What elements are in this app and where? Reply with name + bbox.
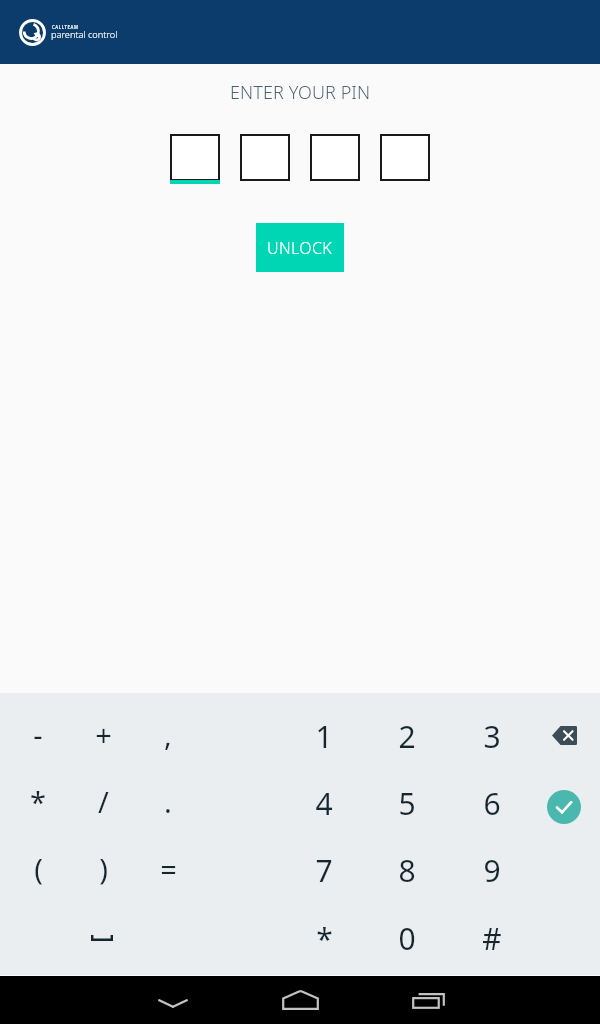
button[interactable]: 9 xyxy=(460,846,524,894)
button[interactable]: Backspace xyxy=(534,711,594,759)
staticText: * xyxy=(316,918,333,959)
staticText: 4 xyxy=(315,783,333,824)
staticText: 6 xyxy=(483,783,501,824)
staticText: parental control xyxy=(51,28,118,41)
button[interactable]: # xyxy=(460,914,524,962)
staticText: * xyxy=(30,782,46,821)
button[interactable] xyxy=(380,134,430,184)
button[interactable]: 4 xyxy=(292,779,356,827)
button[interactable]: 7 xyxy=(292,846,356,894)
button[interactable]: . xyxy=(136,777,200,825)
button[interactable]: Recent apps xyxy=(404,977,452,1024)
staticText: UNLOCK xyxy=(267,237,333,259)
button[interactable]: 5 xyxy=(375,779,439,827)
button[interactable]: - xyxy=(6,710,70,758)
button[interactable]: / xyxy=(71,777,135,825)
button[interactable]: 3 xyxy=(460,712,524,760)
button[interactable]: Space xyxy=(72,914,132,962)
button[interactable]: 0 xyxy=(375,914,439,962)
staticText: ) xyxy=(99,849,108,888)
button[interactable]: 6 xyxy=(460,779,524,827)
button[interactable]: 8 xyxy=(375,846,439,894)
staticText: 3 xyxy=(483,716,501,757)
button[interactable]: + xyxy=(71,710,135,758)
staticText: CALLTEAM xyxy=(52,24,79,30)
staticText: 7 xyxy=(315,850,333,891)
button[interactable]: = xyxy=(136,844,200,892)
button[interactable]: * xyxy=(292,914,356,962)
button[interactable]: Hide keyboard xyxy=(149,979,197,1024)
staticText: - xyxy=(33,715,43,754)
staticText: 1 xyxy=(315,716,333,757)
staticText: + xyxy=(95,715,112,754)
button[interactable]: 2 xyxy=(375,712,439,760)
staticText: / xyxy=(98,782,109,821)
staticText: = xyxy=(160,849,177,888)
button[interactable]: Home xyxy=(276,976,324,1024)
staticText: # xyxy=(482,918,502,959)
staticText: 0 xyxy=(398,918,416,959)
button[interactable] xyxy=(240,134,290,184)
button[interactable]: UNLOCK xyxy=(256,223,344,272)
staticText: , xyxy=(164,715,172,754)
staticText: 9 xyxy=(483,850,501,891)
button[interactable]: Confirm xyxy=(534,783,594,831)
staticText: ENTER YOUR PIN xyxy=(230,80,371,105)
button[interactable] xyxy=(170,134,220,184)
staticText: 8 xyxy=(398,850,416,891)
button[interactable] xyxy=(310,134,360,184)
staticText: 5 xyxy=(398,783,416,824)
button[interactable]: 1 xyxy=(292,712,356,760)
button[interactable]: * xyxy=(6,777,70,825)
staticText: ( xyxy=(34,849,43,888)
staticText: . xyxy=(164,782,172,821)
button[interactable]: ) xyxy=(71,844,135,892)
staticText: 2 xyxy=(398,716,416,757)
button[interactable]: , xyxy=(136,710,200,758)
button[interactable]: ( xyxy=(6,844,70,892)
